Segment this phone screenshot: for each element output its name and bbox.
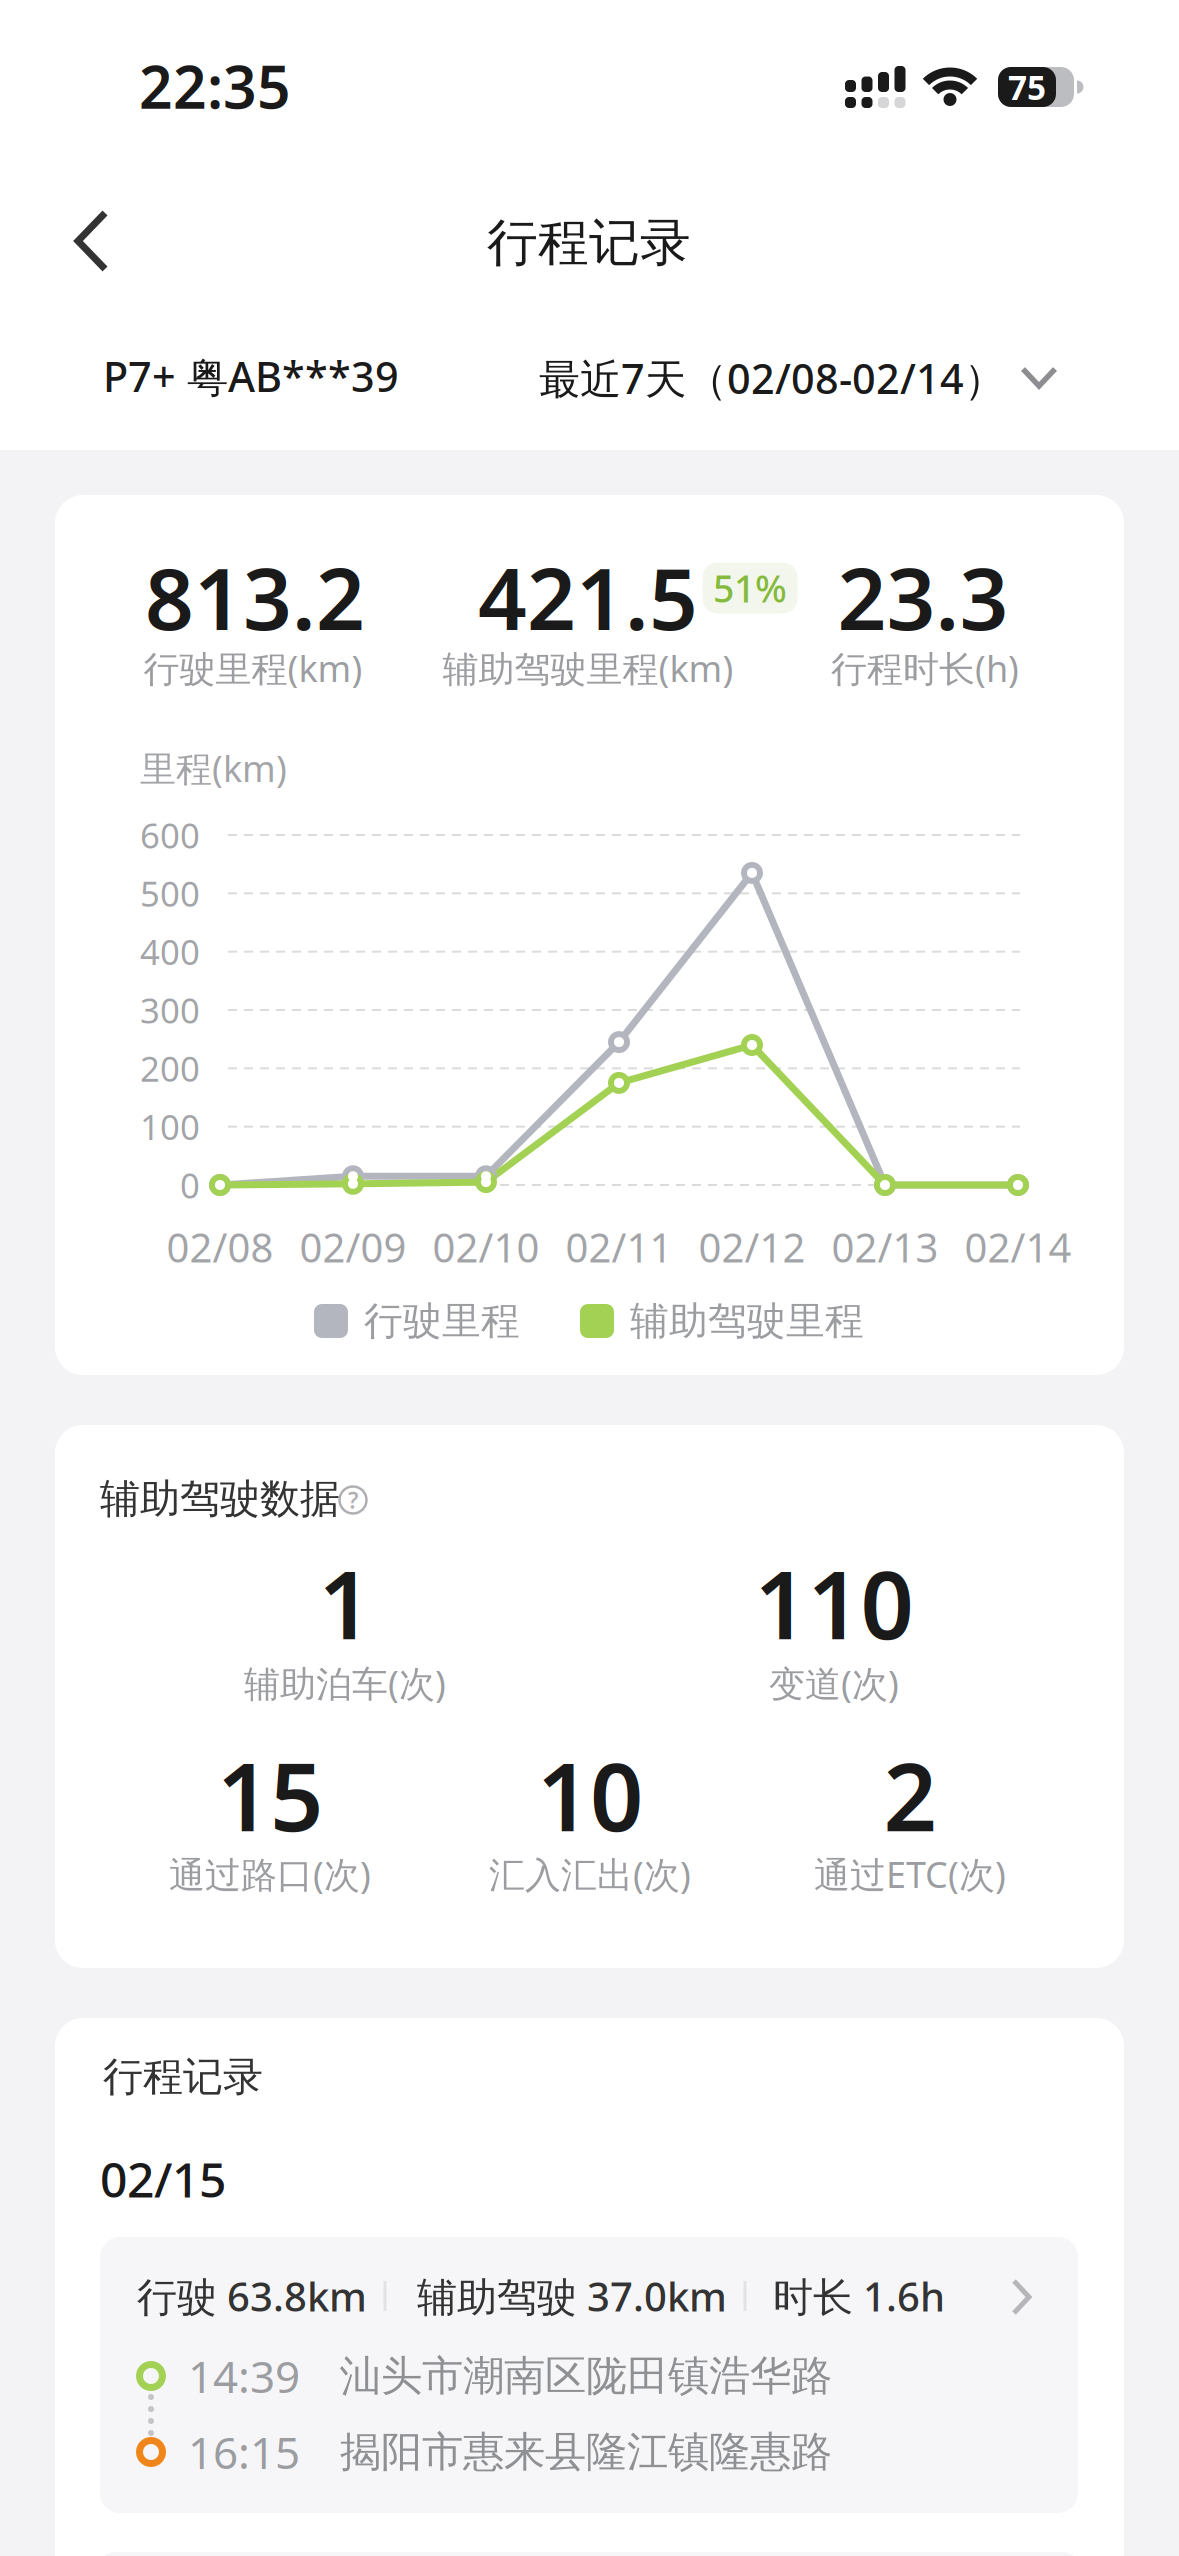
staticText: 通过路口(次): [169, 1850, 371, 1898]
staticText: 辅助泊车(次): [244, 1659, 446, 1707]
staticText: 02/08: [166, 1220, 273, 1273]
staticText: 行程记录: [487, 212, 691, 274]
staticText: 02/13: [831, 1220, 938, 1273]
staticText: 2: [883, 1733, 936, 1857]
staticText: 02/09: [299, 1220, 406, 1273]
button[interactable]: 行驶 63.8km: [100, 2237, 1078, 2513]
button[interactable]: 返回: [74, 210, 108, 272]
staticText: 22:35: [139, 47, 291, 125]
staticText: 时长 1.6h: [773, 2269, 945, 2322]
staticText: 600: [140, 812, 200, 858]
button[interactable]: 辅助驾驶数据说明: [339, 1485, 366, 1515]
staticText: 02/12: [698, 1220, 805, 1273]
staticText: 500: [140, 870, 200, 916]
staticText: 300: [140, 987, 200, 1033]
staticText: 02/11: [565, 1220, 672, 1273]
staticText: 02/15: [100, 2147, 226, 2211]
staticText: 15: [217, 1733, 323, 1857]
staticText: 行程记录: [103, 2052, 263, 2101]
staticText: 最近7天（02/08-02/14）: [539, 351, 1005, 405]
staticText: 辅助驾驶 37.0km: [417, 2269, 727, 2322]
button[interactable]: 最近7天（02/08-02/14）: [539, 351, 1057, 405]
staticText: 75: [1008, 65, 1046, 109]
staticText: 110: [754, 1541, 913, 1665]
staticText: 辅助驾驶里程(km): [442, 644, 733, 692]
staticText: 813.2: [145, 540, 365, 654]
staticText: 揭阳市惠来县隆江镇隆惠路: [340, 2427, 832, 2477]
staticText: 行驶 63.8km: [137, 2269, 367, 2322]
staticText: 行程时长(h): [831, 644, 1019, 692]
staticText: 里程(km): [140, 744, 287, 792]
staticText: 辅助驾驶里程: [630, 1297, 864, 1345]
button[interactable]: P7+ 粤AB***39: [103, 348, 399, 403]
staticText: 1: [318, 1541, 371, 1665]
staticText: 汕头市潮南区陇田镇浩华路: [340, 2351, 832, 2401]
staticText: 16:15: [188, 2423, 300, 2481]
staticText: 421.5: [478, 540, 698, 654]
staticText: 0: [180, 1162, 200, 1208]
staticText: 10: [537, 1733, 643, 1857]
staticText: 100: [140, 1104, 200, 1150]
staticText: 辅助驾驶数据: [100, 1474, 340, 1523]
staticText: 14:39: [188, 2347, 300, 2405]
staticText: 变道(次): [769, 1659, 899, 1707]
staticText: 汇入汇出(次): [489, 1850, 691, 1898]
staticText: 行驶里程(km): [143, 644, 362, 692]
staticText: 02/10: [432, 1220, 539, 1273]
staticText: 02/14: [964, 1220, 1071, 1273]
staticText: 23.3: [837, 540, 1008, 654]
staticText: 51%: [713, 563, 787, 613]
staticText: ?: [348, 1485, 358, 1515]
staticText: 通过ETC(次): [814, 1850, 1006, 1898]
staticText: 行驶里程: [364, 1297, 520, 1345]
staticText: 200: [140, 1045, 200, 1091]
staticText: 400: [140, 929, 200, 975]
staticText: P7+ 粤AB***39: [103, 348, 399, 403]
